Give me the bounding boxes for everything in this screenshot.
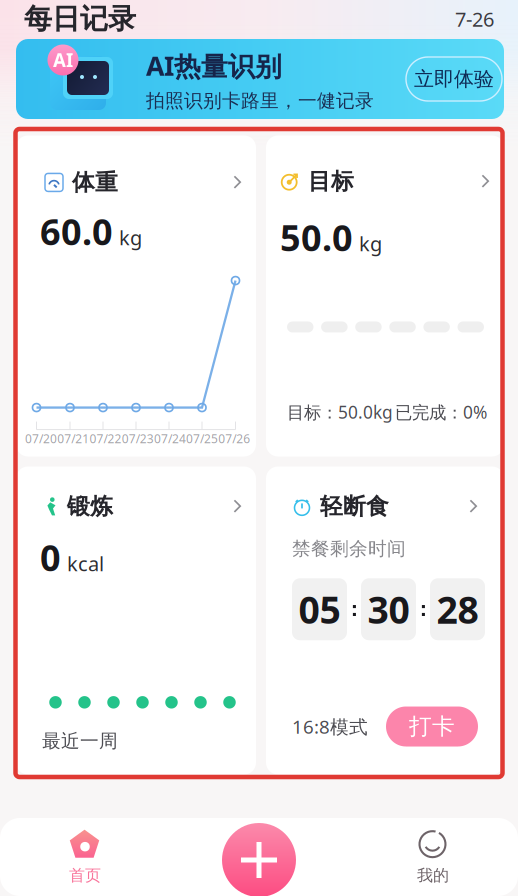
staticText: 目标：50.0kg [287,400,393,423]
staticText: 7-26 [455,6,494,32]
button[interactable]: 轻断食 [266,466,504,774]
staticText: ： [413,597,433,622]
staticText: 立即体验 [414,67,494,91]
staticText: 60.0 [40,207,113,255]
staticText: 07/24 [154,431,186,446]
staticText: ： [344,597,364,622]
staticText: kcal [67,550,104,577]
staticText: 打卡 [409,713,455,740]
staticText: 首页 [69,866,101,885]
button[interactable]: Add record [222,823,296,896]
staticText: kg [359,230,382,257]
button[interactable]: 目标 [266,135,504,456]
staticText: 锻炼 [67,492,113,520]
staticText: 16:8模式 [292,714,368,739]
staticText: 07/26 [218,431,250,446]
staticText: 07/20 [25,431,57,446]
button[interactable]: AI [16,39,504,119]
staticText: kg [119,224,142,251]
staticText: 30 [367,584,409,634]
staticText: 目标 [308,167,354,195]
staticText: 每日记录 [24,2,136,36]
staticText: 体重 [72,168,118,196]
staticText: 最近一周 [42,730,118,752]
button[interactable]: 锻炼 [16,466,256,774]
staticText: 07/25 [186,431,218,446]
staticText: 50.0 [280,213,353,261]
staticText: 07/21 [57,431,89,446]
staticText: 05 [298,584,340,634]
staticText: AI热量识别 [146,48,282,83]
button[interactable]: 我的 [348,818,518,896]
staticText: 拍照识别卡路里，一健记录 [146,89,374,112]
staticText: 28 [436,584,478,634]
button[interactable]: 首页 [0,818,170,896]
button[interactable]: 体重 [16,135,256,456]
staticText: 禁餐剩余时间 [292,537,406,560]
staticText: AI [53,48,73,72]
staticText: 轻断食 [320,492,389,520]
staticText: 已完成：0% [395,400,487,423]
staticText: 07/22 [89,431,121,446]
staticText: 0 [40,533,61,581]
staticText: 07/23 [122,431,154,446]
staticText: 我的 [417,866,449,885]
